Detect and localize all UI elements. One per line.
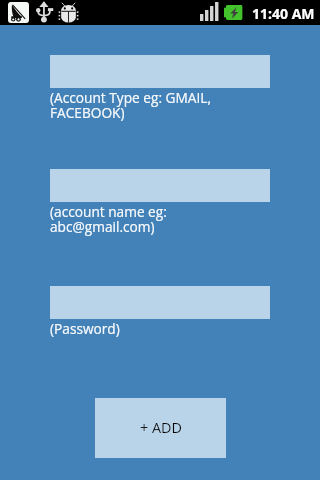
staticText: (Account Type eg: GMAIL, FACEBOOK) bbox=[50, 88, 270, 122]
staticText: 11:40 AM bbox=[252, 4, 315, 23]
button[interactable]: + ADD bbox=[95, 398, 226, 458]
staticText: (Password) bbox=[50, 319, 120, 338]
staticText: + ADD bbox=[140, 418, 182, 438]
staticText: (account name eg: abc@gmail.com) bbox=[50, 202, 270, 236]
